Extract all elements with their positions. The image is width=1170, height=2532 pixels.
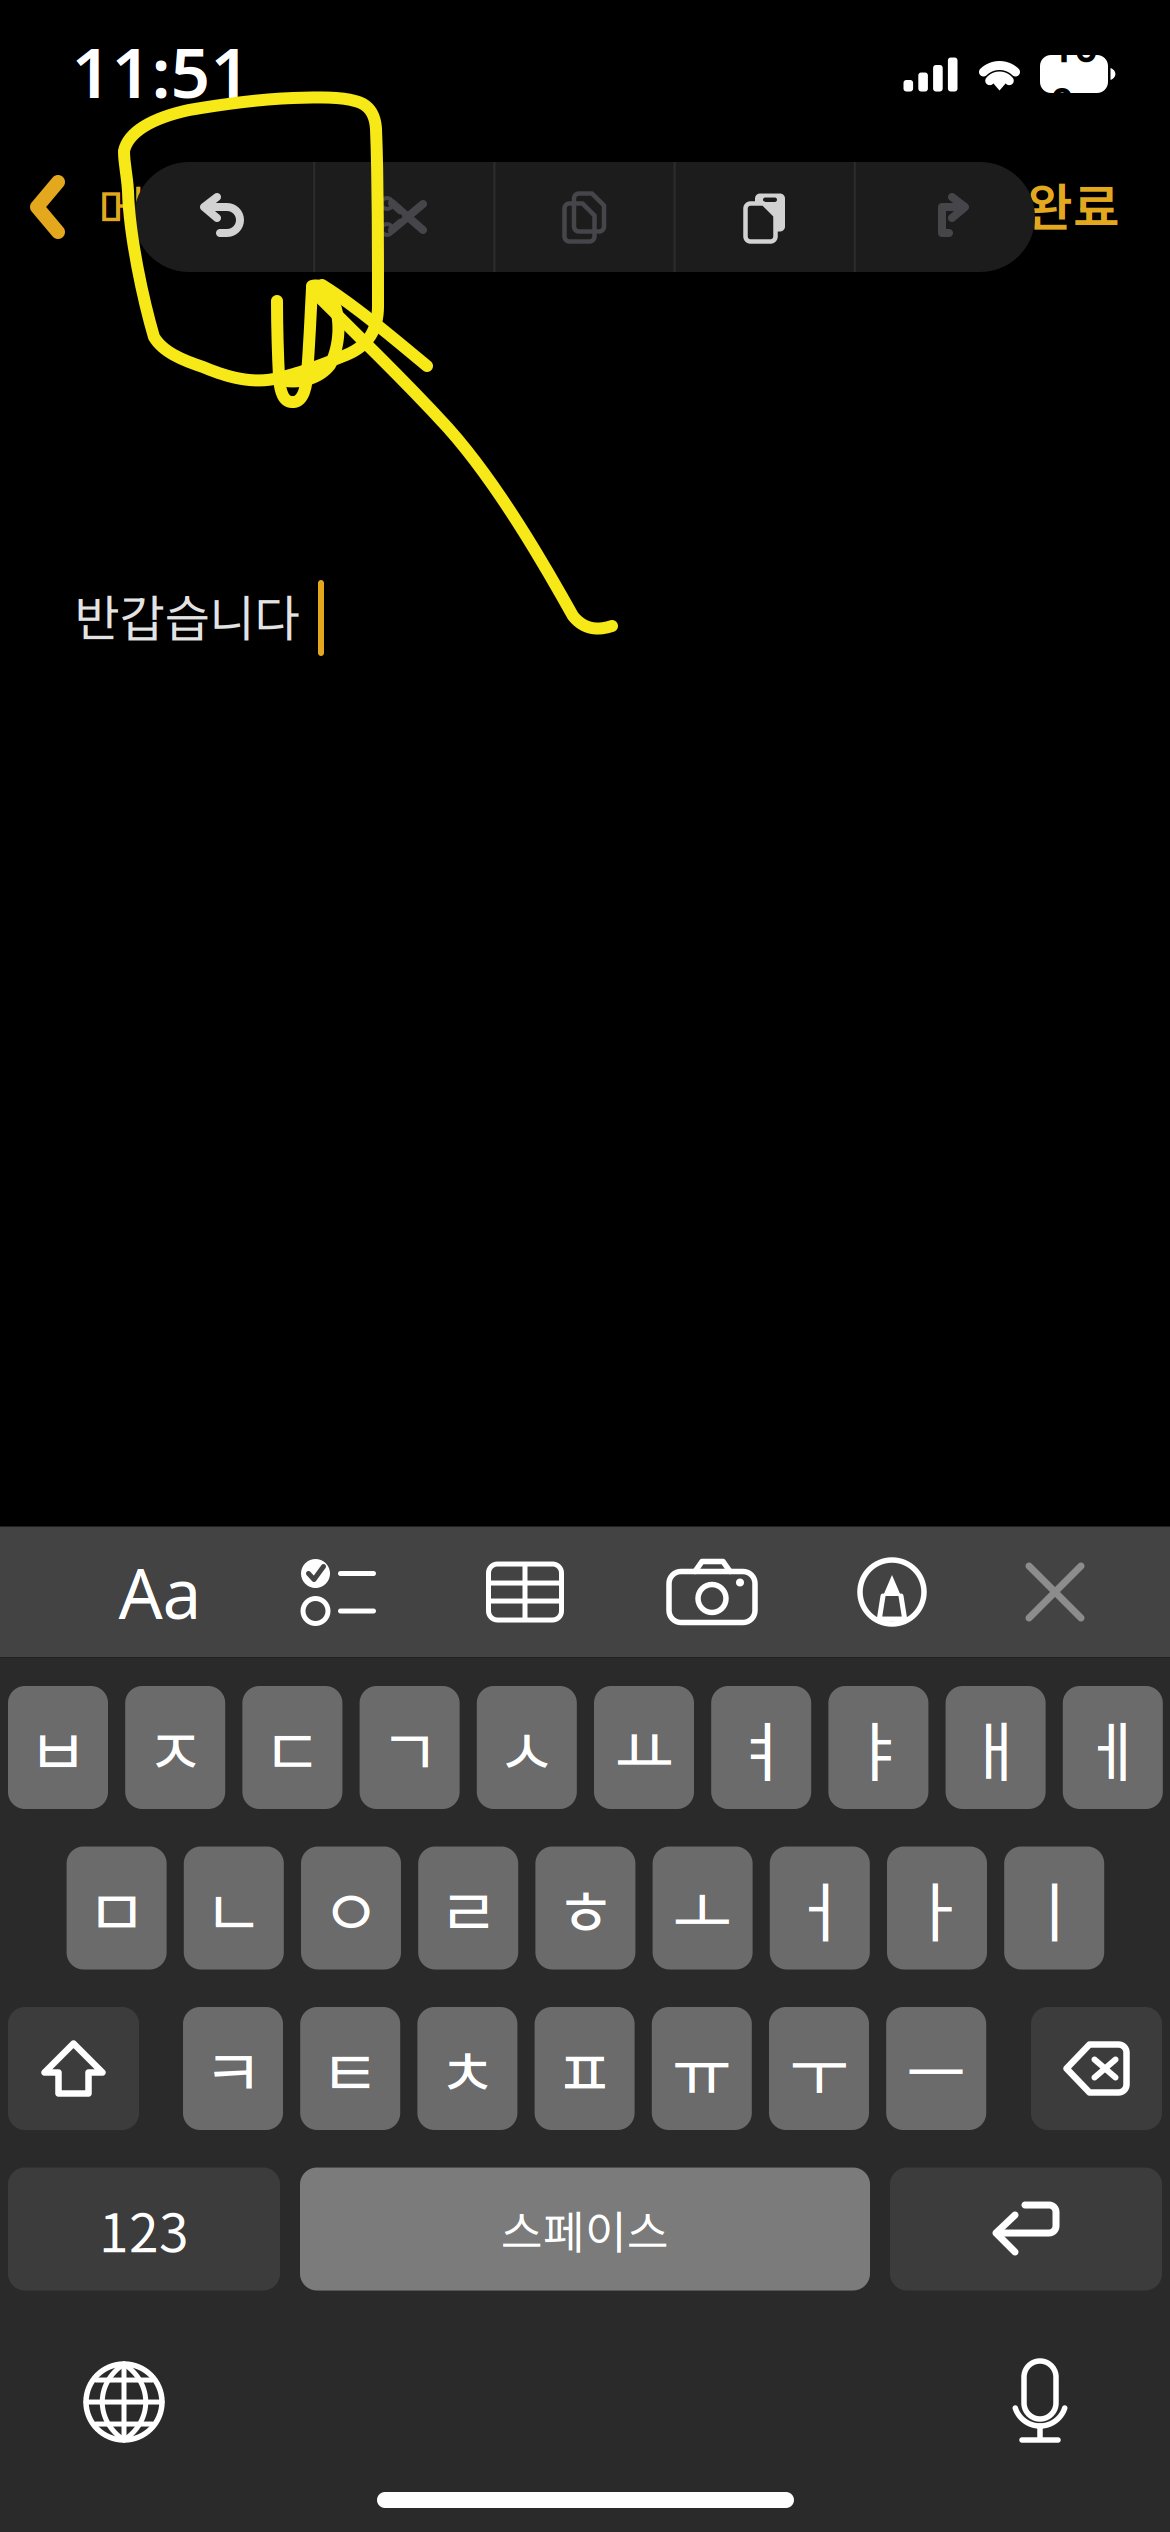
staticText: 메모 bbox=[98, 169, 194, 245]
staticText: ㄹ bbox=[438, 1861, 498, 1955]
button[interactable]: Table bbox=[455, 1526, 595, 1657]
button[interactable]: ㅛ bbox=[594, 1686, 694, 1809]
button[interactable]: Copy bbox=[494, 162, 674, 272]
button[interactable]: ㅁ bbox=[67, 1846, 167, 1969]
staticText: 123 bbox=[99, 2190, 189, 2268]
staticText: ㅈ bbox=[145, 1700, 205, 1795]
staticText: ㅔ bbox=[1083, 1700, 1143, 1795]
staticText: ㄷ bbox=[262, 1700, 322, 1795]
button[interactable]: Camera bbox=[642, 1526, 782, 1657]
button[interactable]: ㅍ bbox=[535, 2007, 635, 2130]
button[interactable]: Next keyboard bbox=[64, 2342, 184, 2462]
button[interactable]: ㄹ bbox=[418, 1846, 518, 1969]
button[interactable]: ㅐ bbox=[946, 1686, 1046, 1809]
button[interactable]: Markup bbox=[822, 1526, 962, 1657]
button[interactable]: ㅇ bbox=[301, 1846, 401, 1969]
staticText: 11:51 bbox=[71, 25, 250, 117]
staticText: ㅛ bbox=[614, 1700, 674, 1795]
button[interactable]: ㅣ bbox=[1004, 1846, 1104, 1969]
button[interactable]: ㅓ bbox=[770, 1846, 870, 1969]
button[interactable]: Checklist bbox=[268, 1526, 408, 1657]
staticText: ㅓ bbox=[790, 1861, 850, 1955]
staticText: ㅁ bbox=[87, 1861, 147, 1955]
button[interactable]: ㅏ bbox=[887, 1846, 987, 1969]
staticText: ㅂ bbox=[28, 1700, 88, 1795]
button[interactable]: ㅎ bbox=[535, 1846, 635, 1969]
staticText: ㅋ bbox=[203, 2021, 263, 2116]
staticText: ㅣ bbox=[1024, 1861, 1084, 1955]
staticText: 완료 bbox=[1026, 167, 1120, 241]
button[interactable]: ㅗ bbox=[653, 1846, 753, 1969]
staticText: ㅊ bbox=[437, 2021, 497, 2116]
button[interactable]: 메모 bbox=[9, 141, 216, 273]
staticText: ㅏ bbox=[907, 1861, 967, 1955]
button[interactable]: ㄷ bbox=[242, 1686, 342, 1809]
button[interactable]: Return bbox=[890, 2167, 1162, 2290]
button[interactable]: ㄴ bbox=[184, 1846, 284, 1969]
button[interactable]: Undo bbox=[134, 162, 314, 272]
button[interactable]: ㅌ bbox=[300, 2007, 400, 2130]
button[interactable]: 스페이스 bbox=[300, 2167, 870, 2290]
button[interactable]: 123 bbox=[8, 2167, 280, 2290]
staticText: ㄴ bbox=[204, 1861, 264, 1955]
staticText: ㅡ bbox=[906, 2021, 966, 2116]
button[interactable]: ㅡ bbox=[886, 2007, 986, 2130]
staticText: ㅇ bbox=[321, 1861, 381, 1955]
staticText: 스페이스 bbox=[501, 2196, 669, 2262]
staticText: ㅕ bbox=[731, 1700, 791, 1795]
staticText: ㅌ bbox=[320, 2021, 380, 2116]
button[interactable]: ㄱ bbox=[360, 1686, 460, 1809]
button[interactable]: Dictation bbox=[980, 2342, 1100, 2462]
staticText: 100 bbox=[1050, 17, 1098, 131]
button[interactable]: Delete bbox=[1031, 2007, 1162, 2130]
staticText: ㅅ bbox=[497, 1700, 557, 1795]
button[interactable]: ㅔ bbox=[1063, 1686, 1163, 1809]
staticText: ㄱ bbox=[380, 1700, 440, 1795]
button[interactable]: ㅅ bbox=[477, 1686, 577, 1809]
staticText: Aa bbox=[118, 1546, 201, 1638]
button[interactable]: ㅈ bbox=[125, 1686, 225, 1809]
button[interactable]: Redo bbox=[855, 162, 1035, 272]
staticText: 반갑습니다 bbox=[74, 579, 299, 651]
button[interactable]: ㅠ bbox=[652, 2007, 752, 2130]
staticText: ㅑ bbox=[848, 1700, 908, 1795]
staticText: ㅜ bbox=[789, 2021, 849, 2116]
staticText: ㅠ bbox=[672, 2021, 732, 2116]
staticText: ㅗ bbox=[673, 1861, 733, 1955]
button[interactable]: ㅂ bbox=[8, 1686, 108, 1809]
button[interactable]: ㅊ bbox=[417, 2007, 517, 2130]
button[interactable]: 완료 bbox=[986, 139, 1152, 269]
button[interactable]: ㅕ bbox=[711, 1686, 811, 1809]
button[interactable]: ㅋ bbox=[183, 2007, 283, 2130]
button[interactable]: ㅑ bbox=[828, 1686, 928, 1809]
button[interactable]: Cut bbox=[314, 162, 494, 272]
button[interactable]: Format bbox=[90, 1526, 230, 1657]
button[interactable]: Shift bbox=[8, 2007, 139, 2130]
staticText: ㅐ bbox=[966, 1700, 1026, 1795]
button[interactable]: Hide keyboard bbox=[985, 1526, 1125, 1657]
staticText: ㅍ bbox=[555, 2021, 615, 2116]
button[interactable]: ㅜ bbox=[769, 2007, 869, 2130]
staticText: ㅎ bbox=[555, 1861, 615, 1955]
button[interactable]: Paste bbox=[675, 162, 855, 272]
